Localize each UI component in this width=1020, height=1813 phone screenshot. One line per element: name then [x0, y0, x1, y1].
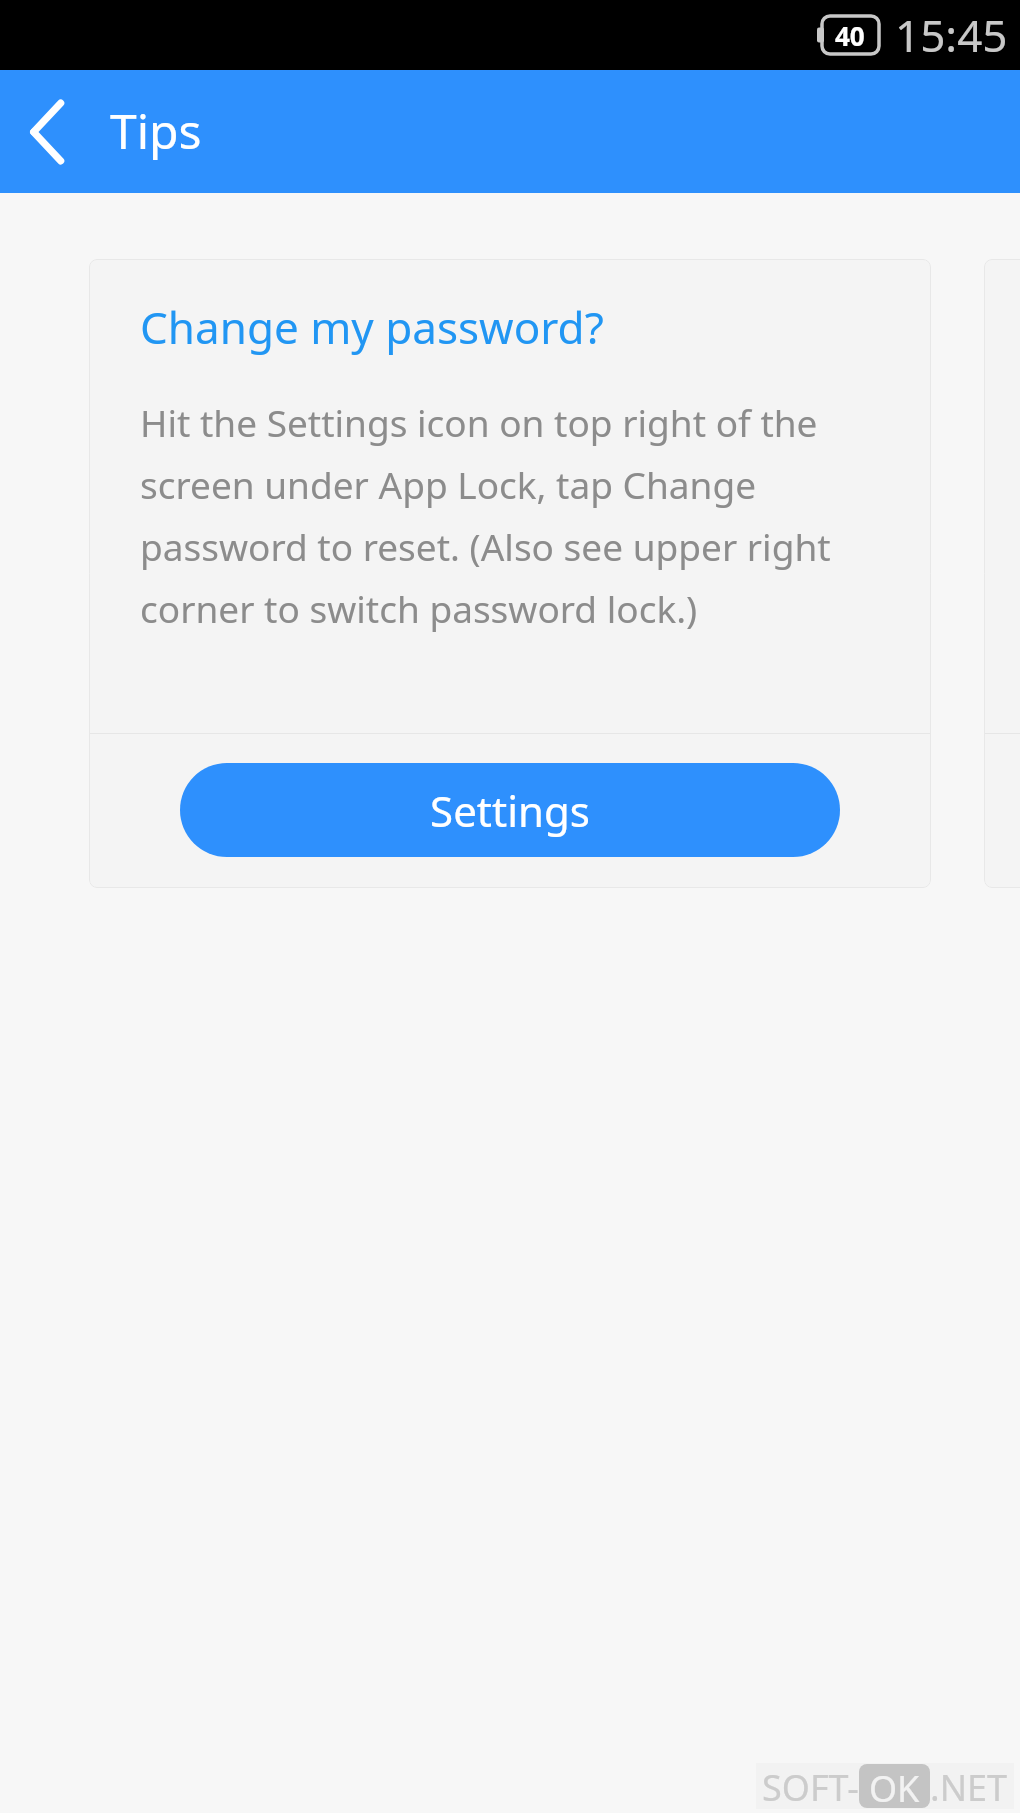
- staticText: Hit the Settings icon on top right of th…: [140, 397, 891, 634]
- button[interactable]: Back: [0, 70, 95, 193]
- button[interactable]: Settings: [180, 763, 840, 857]
- staticText: Settings: [430, 782, 590, 839]
- staticText: Change my password?: [140, 297, 604, 357]
- staticText: OK: [869, 1764, 920, 1808]
- staticText: 40: [835, 18, 865, 53]
- button[interactable]: Change my password?: [89, 259, 931, 888]
- staticText: 15:45: [895, 5, 1008, 65]
- staticText: SOFT-: [762, 1763, 859, 1809]
- staticText: .NET: [930, 1763, 1008, 1809]
- staticText: Tips: [110, 98, 202, 163]
